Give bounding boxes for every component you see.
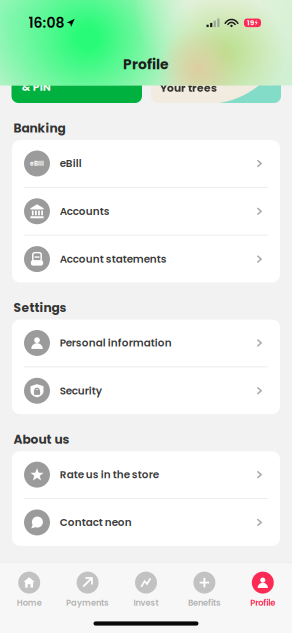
staticText: About us — [13, 431, 69, 448]
staticText: Profile — [250, 597, 275, 609]
button[interactable]: Contact neon — [12, 499, 280, 546]
button[interactable]: Personal information — [12, 320, 280, 366]
staticText: Payments — [66, 597, 109, 609]
button[interactable]: Rate us in the store — [12, 451, 280, 498]
button[interactable]: Profile — [234, 572, 292, 609]
staticText: Banking — [13, 120, 65, 137]
button[interactable]: & PIN — [11, 63, 142, 103]
button[interactable]: Accounts — [12, 188, 280, 235]
button[interactable]: Invest — [117, 572, 175, 609]
staticText: 19 — [247, 18, 254, 28]
staticText: Profile — [123, 55, 169, 74]
staticText: & PIN — [22, 80, 51, 94]
staticText: Contact neon — [60, 515, 132, 530]
staticText: Home — [17, 597, 42, 609]
staticText: Personal information — [60, 336, 172, 350]
staticText: Benefits — [188, 597, 221, 609]
staticText: 16:08 — [28, 13, 64, 33]
staticText: Security — [60, 383, 102, 398]
button[interactable]: Account statements — [12, 236, 280, 282]
staticText: eBill — [30, 159, 44, 168]
staticText: Your trees — [160, 81, 217, 95]
button[interactable]: Payments — [58, 572, 117, 609]
staticText: Settings — [13, 299, 66, 316]
button[interactable]: eBill — [12, 140, 280, 187]
button[interactable]: Your trees — [151, 63, 281, 103]
button[interactable]: Benefits — [175, 572, 234, 609]
button[interactable]: Security — [12, 367, 280, 414]
staticText: Rate us in the store — [60, 467, 159, 482]
staticText: Accounts — [60, 204, 110, 219]
staticText: Account statements — [60, 252, 167, 266]
staticText: eBill — [60, 156, 82, 171]
staticText: Invest — [133, 597, 158, 609]
button[interactable]: Home — [0, 572, 58, 609]
